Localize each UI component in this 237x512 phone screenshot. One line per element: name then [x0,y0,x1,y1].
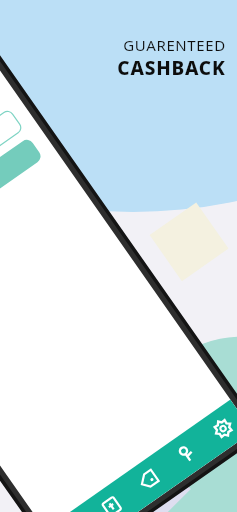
button[interactable]: Settings [200,328,222,350]
